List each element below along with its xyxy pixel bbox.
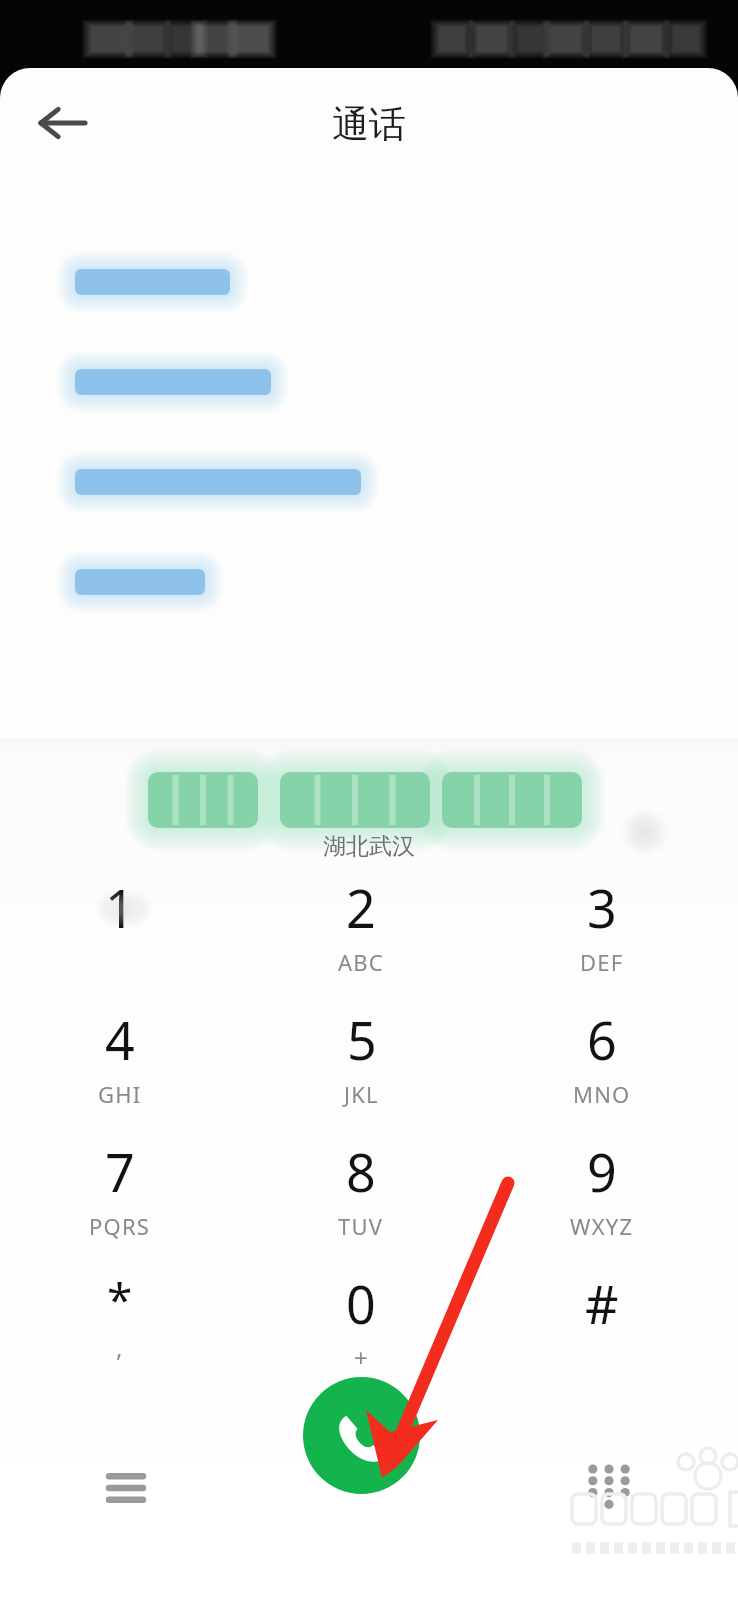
staticText: , — [116, 1331, 124, 1364]
button[interactable]: 5 — [281, 1004, 441, 1128]
staticText: 4 — [105, 1004, 135, 1075]
staticText: MNO — [573, 1079, 631, 1109]
staticText: PQRS — [89, 1211, 151, 1241]
staticText: 7 — [105, 1136, 135, 1207]
staticText: ABC — [338, 947, 384, 977]
button[interactable]: Back — [24, 85, 100, 161]
staticText: TUV — [338, 1211, 384, 1241]
button[interactable]: Dialpad — [554, 1436, 664, 1540]
button[interactable]: Call — [303, 1377, 420, 1494]
button[interactable]: # — [522, 1268, 682, 1392]
staticText: 0 — [346, 1268, 376, 1339]
staticText: * — [107, 1268, 133, 1331]
staticText: DEF — [580, 947, 624, 977]
button[interactable]: Menu — [71, 1436, 181, 1540]
button[interactable]: 0 — [281, 1268, 441, 1392]
button[interactable]: 7 — [40, 1136, 200, 1260]
staticText: 5 — [347, 1004, 377, 1075]
button[interactable]: 4 — [40, 1004, 200, 1128]
staticText: GHI — [98, 1079, 142, 1109]
staticText: 8 — [346, 1136, 376, 1207]
staticText: 9 — [587, 1136, 617, 1207]
staticText: WXYZ — [570, 1211, 634, 1241]
staticText: 1 — [105, 872, 135, 943]
staticText: # — [585, 1268, 619, 1339]
button[interactable]: 2 — [281, 872, 441, 996]
button[interactable]: Delete — [601, 788, 689, 876]
staticText: + — [354, 1341, 369, 1374]
staticText: JKL — [344, 1079, 379, 1109]
staticText: 湖北武汉 — [0, 832, 738, 861]
staticText: 3 — [587, 872, 617, 943]
button[interactable]: 1 — [40, 872, 200, 996]
button[interactable]: * — [40, 1268, 200, 1392]
staticText: 6 — [587, 1004, 617, 1075]
staticText: 通话 — [332, 101, 406, 148]
button[interactable]: 9 — [522, 1136, 682, 1260]
staticText: 2 — [346, 872, 376, 943]
button[interactable]: 8 — [281, 1136, 441, 1260]
button[interactable]: 6 — [522, 1004, 682, 1128]
button[interactable]: 3 — [522, 872, 682, 996]
